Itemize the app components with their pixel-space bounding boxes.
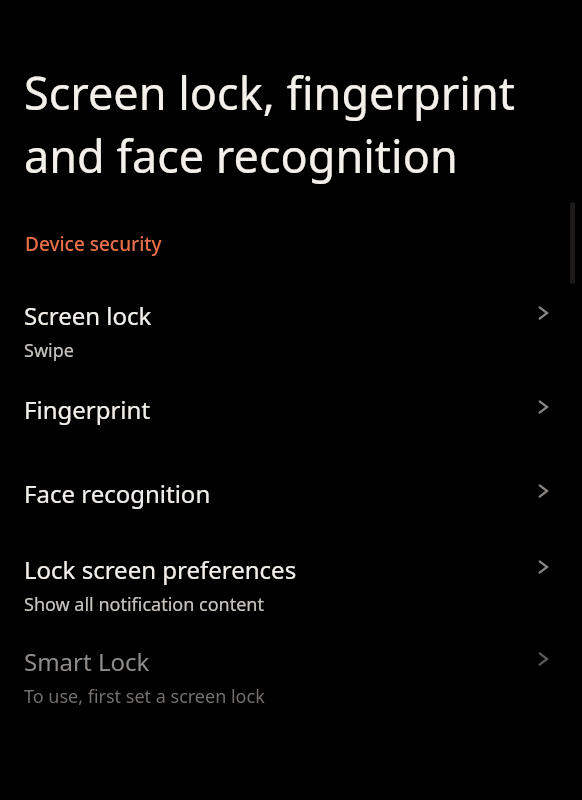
staticText: Swipe: [24, 338, 74, 363]
staticText: Screen lock, fingerprint and face recogn…: [24, 62, 515, 187]
button[interactable]: Fingerprint: [0, 371, 582, 455]
staticText: Fingerprint: [24, 393, 151, 426]
staticText: Show all notification content: [24, 592, 264, 617]
staticText: Screen lock: [24, 299, 152, 332]
button[interactable]: Lock screen preferences: [0, 539, 582, 625]
staticText: Lock screen preferences: [24, 553, 297, 586]
button[interactable]: Face recognition: [0, 455, 582, 539]
button[interactable]: Screen lock: [0, 285, 582, 371]
staticText: To use, first set a screen lock: [24, 684, 265, 709]
staticText: Face recognition: [24, 477, 211, 510]
staticText: Device security: [25, 231, 162, 257]
staticText: Smart Lock: [24, 645, 150, 678]
button[interactable]: Smart Lock: [0, 625, 582, 711]
